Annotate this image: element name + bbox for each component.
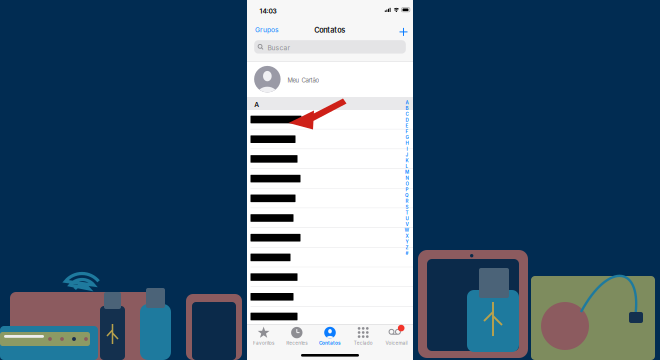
staticText: Voicemail [385, 340, 407, 346]
staticText: A [405, 100, 408, 105]
button[interactable] [247, 110, 413, 130]
staticText: L [405, 164, 408, 169]
button[interactable] [247, 169, 413, 189]
button[interactable]: Grupos [251, 21, 284, 38]
staticText: F [405, 129, 408, 134]
staticText: Teclado [354, 340, 373, 346]
staticText: J [405, 152, 408, 158]
button[interactable] [247, 307, 413, 327]
button[interactable] [247, 208, 413, 228]
staticText: # [405, 251, 408, 256]
staticText: S [405, 204, 408, 210]
button[interactable]: Índice alfabético [403, 99, 411, 256]
button[interactable]: Teclado [347, 327, 380, 348]
button[interactable]: Favoritos [247, 327, 280, 348]
staticText: Z [405, 245, 408, 250]
staticText: W [404, 227, 409, 233]
staticText: Contatos [319, 340, 341, 346]
staticText: C [405, 111, 408, 117]
staticText: X [405, 233, 408, 239]
staticText: O [405, 181, 408, 187]
staticText: Buscar [268, 44, 291, 52]
staticText: P [405, 187, 408, 192]
staticText: H [405, 140, 408, 146]
staticText: K [405, 158, 408, 163]
staticText: 14:03 [259, 7, 276, 15]
button[interactable] [247, 287, 413, 307]
button[interactable]: Contatos [313, 327, 347, 348]
staticText: B [405, 106, 408, 111]
button[interactable] [247, 228, 413, 248]
staticText: T [405, 210, 408, 216]
staticText: Q [405, 193, 409, 198]
staticText: Y [405, 239, 408, 245]
staticText: Grupos [255, 26, 279, 34]
button[interactable]: Voicemail [380, 327, 413, 348]
button[interactable]: Novo contato [395, 24, 412, 40]
button[interactable] [247, 248, 413, 268]
staticText: M [405, 169, 409, 175]
staticText: Favoritos [253, 340, 274, 346]
button[interactable]: Recentes [280, 327, 313, 348]
staticText: I [406, 146, 407, 152]
staticText: Recentes [286, 340, 307, 346]
button[interactable] [247, 130, 413, 149]
button[interactable] [247, 268, 413, 287]
button[interactable] [247, 189, 413, 208]
button[interactable]: Meu Cartão [247, 62, 413, 97]
staticText: A [254, 101, 259, 109]
staticText: Contatos [314, 26, 345, 35]
staticText: E [405, 123, 408, 129]
staticText: V [405, 222, 408, 227]
staticText: Meu Cartão [287, 77, 319, 84]
button[interactable] [247, 149, 413, 169]
button[interactable]: Buscar [254, 40, 406, 54]
staticText: G [405, 135, 408, 140]
staticText: D [405, 117, 408, 123]
staticText: U [405, 216, 408, 221]
staticText: N [405, 175, 408, 181]
staticText: R [405, 198, 408, 204]
